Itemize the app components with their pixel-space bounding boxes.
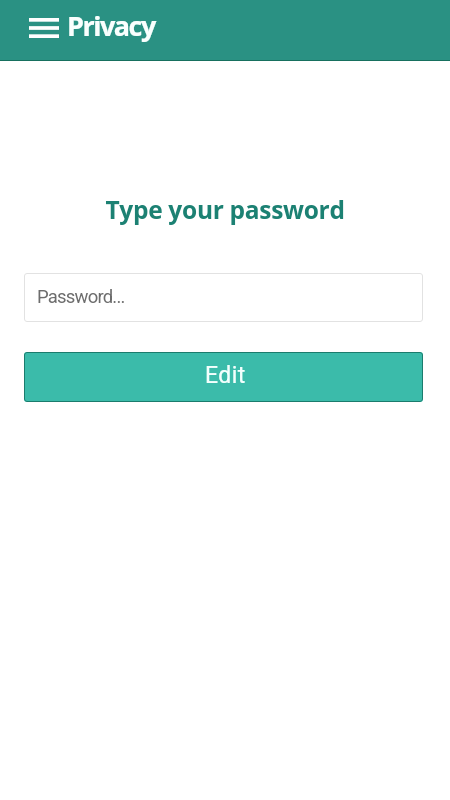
staticText: Edit bbox=[205, 362, 246, 389]
staticText: Privacy bbox=[67, 7, 155, 44]
staticText: Password... bbox=[37, 286, 125, 308]
button[interactable]: Password... bbox=[24, 273, 423, 322]
button[interactable]: Open navigation menu bbox=[22, 9, 65, 52]
button[interactable]: Edit bbox=[24, 352, 423, 402]
staticText: Type your password bbox=[0, 193, 450, 226]
